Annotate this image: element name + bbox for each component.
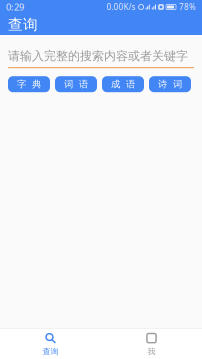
button[interactable]: 请输入完整的搜索内容或者关键字 bbox=[8, 45, 194, 68]
button[interactable]: 我 bbox=[101, 329, 202, 359]
staticText: 78% bbox=[179, 2, 196, 12]
staticText: 请输入完整的搜索内容或者关键字 bbox=[8, 49, 188, 63]
button[interactable]: 查询 bbox=[0, 329, 101, 359]
staticText: 0.00K/s bbox=[107, 2, 136, 12]
staticText: 成 语 bbox=[111, 78, 135, 90]
staticText: 查询 bbox=[42, 347, 58, 356]
staticText: 我 bbox=[147, 347, 155, 356]
staticText: 词 语 bbox=[64, 78, 88, 90]
button[interactable]: 字 典 bbox=[8, 76, 50, 92]
staticText: 查询 bbox=[8, 15, 38, 33]
staticText: 0:29 bbox=[6, 1, 24, 13]
staticText: 诗 词 bbox=[158, 78, 182, 90]
button[interactable]: 诗 词 bbox=[149, 76, 191, 92]
button[interactable]: 词 语 bbox=[55, 76, 97, 92]
staticText: 字 典 bbox=[17, 78, 41, 90]
button[interactable]: 成 语 bbox=[102, 76, 144, 92]
